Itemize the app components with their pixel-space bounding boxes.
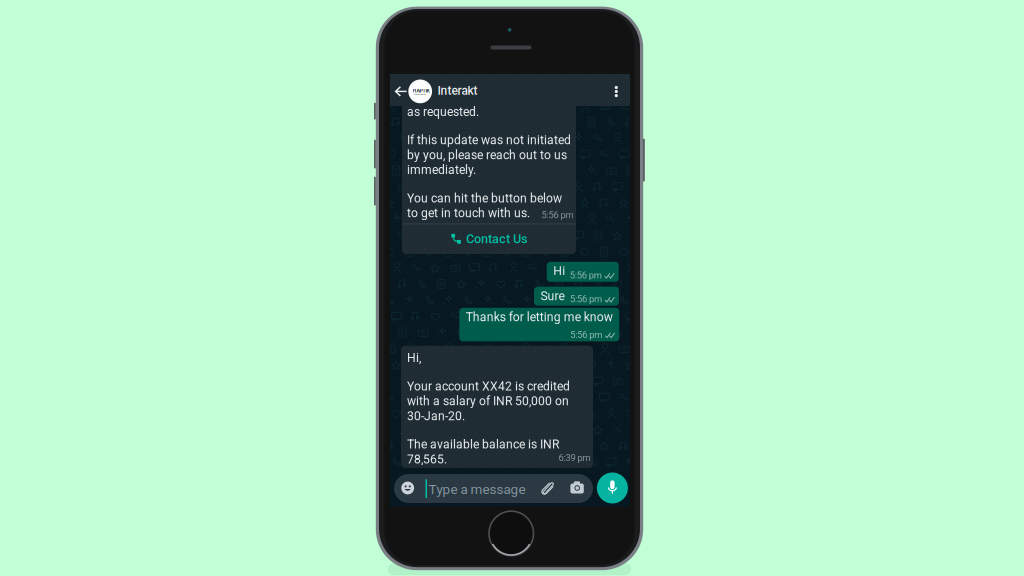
staticText: 5:56 pm: [541, 209, 573, 220]
staticText: Contact Us: [466, 232, 527, 246]
staticText: The available balance is INR 78,565.: [407, 437, 559, 466]
button[interactable]: Attach: [394, 474, 418, 503]
staticText: HAPTIK: [413, 88, 430, 94]
staticText: Type a message: [428, 481, 525, 497]
staticText: Thanks for letting me know: [466, 310, 613, 324]
staticText: Your account XX42 is credited with a sal…: [407, 379, 570, 423]
staticText: If this update was not initiated by you,…: [407, 133, 571, 177]
staticText: 6:39 pm: [558, 452, 590, 463]
staticText: Hi: [553, 264, 565, 278]
staticText: Hi,: [407, 351, 421, 365]
staticText: Interakt: [437, 84, 477, 98]
button[interactable]: Camera: [394, 474, 418, 503]
staticText: 5:56 pm: [570, 294, 602, 305]
staticText: 5:56 pm: [570, 270, 602, 281]
button[interactable]: Back: [390, 74, 413, 106]
staticText: Sure: [540, 289, 564, 303]
button[interactable]: Record voice message: [390, 470, 421, 501]
button[interactable]: More options: [390, 74, 412, 106]
button[interactable]: Contact Us: [402, 66, 576, 95]
staticText: 5:56 pm: [570, 329, 602, 340]
staticText: You can hit the button below to get in t…: [407, 191, 562, 220]
staticText: Please find your account statement as re…: [407, 75, 541, 119]
